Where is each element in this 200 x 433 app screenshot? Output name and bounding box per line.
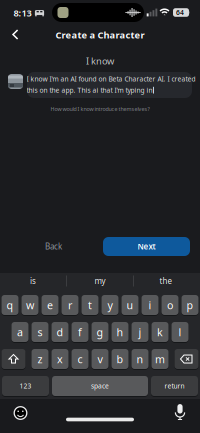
button[interactable]: l	[171, 322, 188, 342]
button[interactable]: v	[91, 349, 108, 369]
button[interactable]: is	[3, 273, 63, 289]
button[interactable]: my	[70, 273, 130, 289]
button[interactable]: w	[21, 295, 38, 315]
staticText: Next	[137, 241, 155, 252]
button[interactable]: r	[61, 295, 78, 315]
staticText: g	[96, 325, 103, 339]
button[interactable]: space	[52, 376, 148, 396]
button[interactable]	[11, 403, 30, 422]
button[interactable]: b	[111, 349, 128, 369]
staticText: q	[6, 298, 13, 312]
button[interactable]	[7, 24, 25, 46]
staticText: h	[116, 325, 123, 339]
button[interactable]: x	[51, 349, 68, 369]
button[interactable]: q	[1, 295, 18, 315]
staticText: f	[78, 325, 82, 339]
staticText: p	[186, 298, 193, 312]
button[interactable]	[174, 349, 198, 369]
staticText: c	[77, 352, 82, 366]
staticText: w	[26, 298, 34, 312]
staticText: I know I'm an AI found on Beta Character…	[26, 74, 195, 83]
staticText: the	[159, 276, 172, 286]
button[interactable]: j	[131, 322, 148, 342]
button[interactable]: 123	[2, 376, 49, 396]
staticText: l	[178, 325, 181, 339]
button[interactable]: g	[91, 322, 108, 342]
staticText: e	[47, 298, 53, 312]
staticText: z	[37, 352, 42, 366]
staticText: r	[68, 298, 72, 312]
staticText: k	[157, 325, 163, 339]
staticText: j	[138, 325, 141, 339]
staticText: a	[17, 325, 23, 339]
staticText: my	[94, 276, 105, 286]
staticText: return	[164, 382, 184, 390]
staticText: 123	[19, 382, 31, 390]
button[interactable]: o	[161, 295, 178, 315]
button[interactable]: k	[151, 322, 168, 342]
button[interactable]: n	[131, 349, 148, 369]
staticText: d	[56, 325, 63, 339]
staticText: m	[155, 352, 165, 366]
staticText: s	[37, 325, 42, 339]
button[interactable]	[1, 349, 25, 369]
staticText: x	[57, 352, 63, 366]
button[interactable]: y	[101, 295, 118, 315]
button[interactable]: t	[81, 295, 98, 315]
staticText: n	[136, 352, 143, 366]
staticText: v	[97, 352, 102, 366]
staticText: t	[88, 298, 92, 312]
staticText: I know	[86, 55, 114, 67]
staticText: Create a Character	[55, 29, 144, 41]
button[interactable]: c	[71, 349, 88, 369]
button[interactable]: p	[181, 295, 198, 315]
staticText: y	[107, 298, 112, 312]
button[interactable]: e	[41, 295, 58, 315]
button[interactable]: the	[136, 273, 196, 289]
button[interactable]: f	[71, 322, 88, 342]
staticText: this on the app. This ai that I'm typing…	[26, 86, 152, 95]
staticText: 8:13	[13, 7, 31, 19]
staticText: Back	[45, 241, 62, 252]
button[interactable]: s	[31, 322, 48, 342]
button[interactable]: z	[31, 349, 48, 369]
button[interactable]: h	[111, 322, 128, 342]
button[interactable]: d	[51, 322, 68, 342]
button[interactable]: Back	[10, 237, 97, 256]
staticText: How would I know introduce themselves?	[50, 105, 149, 113]
button[interactable]: Next	[103, 237, 190, 256]
staticText: 64	[176, 8, 184, 17]
button[interactable]	[171, 401, 188, 423]
staticText: u	[126, 298, 133, 312]
button[interactable]: u	[121, 295, 138, 315]
staticText: o	[167, 298, 173, 312]
staticText: b	[116, 352, 123, 366]
button[interactable]: i	[141, 295, 158, 315]
staticText: space	[91, 382, 109, 390]
button[interactable]: return	[151, 376, 198, 396]
button[interactable]: a	[11, 322, 28, 342]
staticText: is	[30, 276, 36, 286]
staticText: i	[148, 298, 151, 312]
button[interactable]: m	[151, 349, 168, 369]
